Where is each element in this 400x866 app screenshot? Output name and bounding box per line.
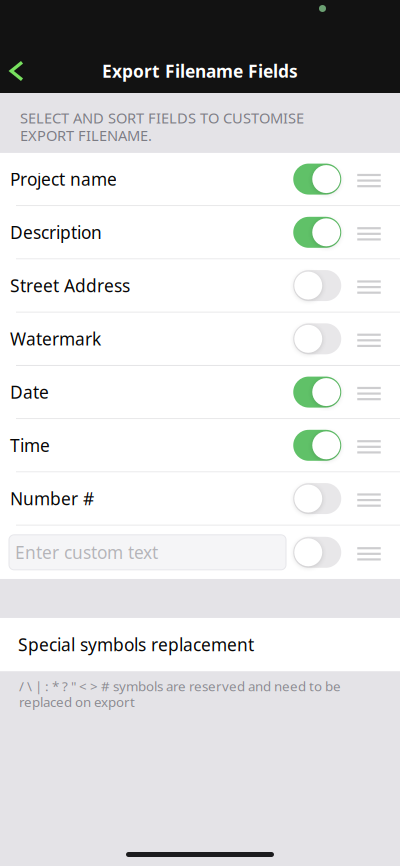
staticText: Watermark [10,327,101,350]
button[interactable]: Enter custom text [9,535,286,570]
staticText: Street Address [10,274,130,297]
button[interactable]: Description [0,206,400,259]
button[interactable]: Street Address [0,259,400,313]
button[interactable]: Project name [0,153,400,206]
staticText: SELECT AND SORT FIELDS TO CUSTOMISE [20,108,304,127]
staticText: Special symbols replacement [18,633,254,656]
staticText: EXPORT FILENAME. [20,125,152,145]
button[interactable]: Special symbols replacement [0,618,400,671]
staticText: / \ | : * ? " < > # symbols are reserved… [19,677,341,695]
staticText: Time [10,434,50,457]
button[interactable]: Back [0,49,38,93]
staticText: Project name [10,168,117,191]
staticText: Date [10,381,49,404]
button[interactable]: Time [0,419,400,472]
staticText: Description [10,221,102,244]
button[interactable]: Date [0,366,400,419]
button[interactable]: Number # [0,472,400,526]
button[interactable]: Watermark [0,313,400,366]
staticText: Export Filename Fields [102,59,298,82]
staticText: Enter custom text [15,541,158,564]
staticText: replaced on export [19,693,135,711]
staticText: Number # [10,487,94,510]
